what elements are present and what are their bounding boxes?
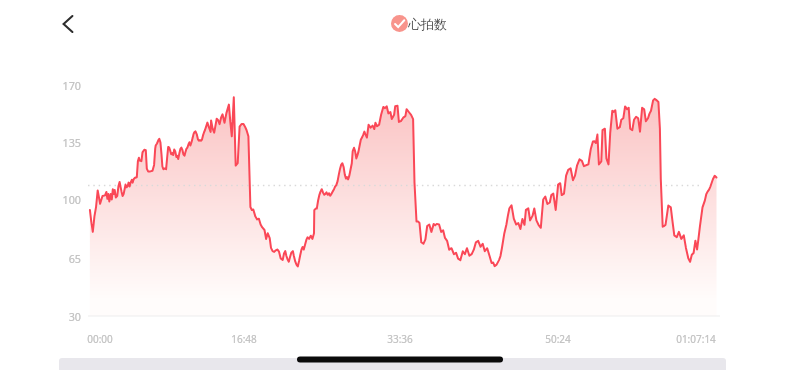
staticText: 65 xyxy=(58,251,81,266)
staticText: 100 xyxy=(58,192,81,207)
staticText: 135 xyxy=(58,135,81,150)
staticText: 50:24 xyxy=(528,332,588,346)
button[interactable]: Back xyxy=(46,2,90,46)
staticText: 01:07:14 xyxy=(666,332,726,346)
staticText: 00:00 xyxy=(70,332,130,346)
staticText: 170 xyxy=(58,78,81,93)
staticText: 30 xyxy=(58,309,81,324)
button[interactable]: 心拍数 xyxy=(391,15,447,32)
staticText: 33:36 xyxy=(370,332,430,346)
staticText: 16:48 xyxy=(214,332,274,346)
staticText: 心拍数 xyxy=(408,16,447,32)
